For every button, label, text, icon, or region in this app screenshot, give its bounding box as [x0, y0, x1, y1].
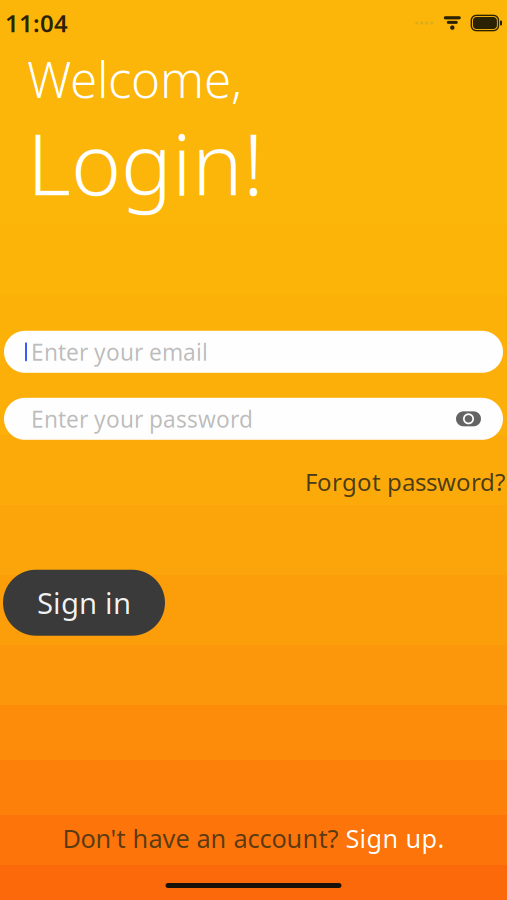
button[interactable]: Sign in — [3, 570, 165, 636]
button[interactable]: Enter your email — [4, 331, 503, 373]
button[interactable]: Enter your password — [4, 398, 503, 440]
staticText: Forgot password? — [305, 466, 505, 498]
staticText: Sign up. — [345, 821, 444, 855]
staticText: Enter your password — [31, 404, 253, 434]
button[interactable]: Don't have an account? — [62, 821, 444, 855]
staticText: Welcome, — [27, 46, 242, 111]
staticText: Sign in — [37, 583, 131, 622]
button[interactable]: Forgot password? — [305, 458, 505, 506]
staticText: 11:04 — [5, 7, 68, 39]
staticText: Enter your email — [31, 337, 208, 367]
staticText: Login! — [27, 105, 264, 219]
staticText: Don't have an account? — [62, 821, 338, 855]
